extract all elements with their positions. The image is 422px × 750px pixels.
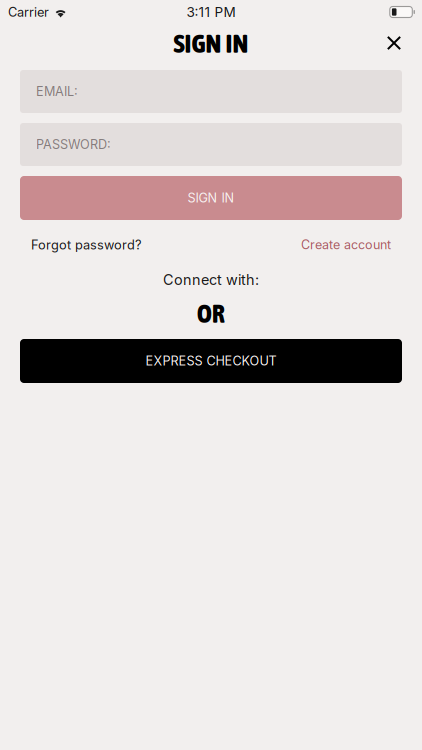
staticText: SIGN IN [187,190,234,206]
staticText: EXPRESS CHECKOUT [145,353,276,369]
staticText: Carrier [8,4,49,20]
staticText: 3:11 PM [186,4,235,20]
staticText: PASSWORD: [36,137,111,152]
button[interactable]: Forgot password? [31,237,142,252]
staticText: EMAIL: [36,84,78,99]
staticText: Create account [301,237,391,252]
staticText: Forgot password? [31,237,142,252]
button[interactable]: SIGN IN [0,176,422,220]
button[interactable]: Create account [301,237,391,252]
button[interactable]: Close [373,26,415,60]
staticText: Connect with: [163,271,259,285]
staticText: OR [197,299,225,319]
staticText: SIGN IN [173,28,248,58]
button[interactable]: EXPRESS CHECKOUT [0,339,422,383]
